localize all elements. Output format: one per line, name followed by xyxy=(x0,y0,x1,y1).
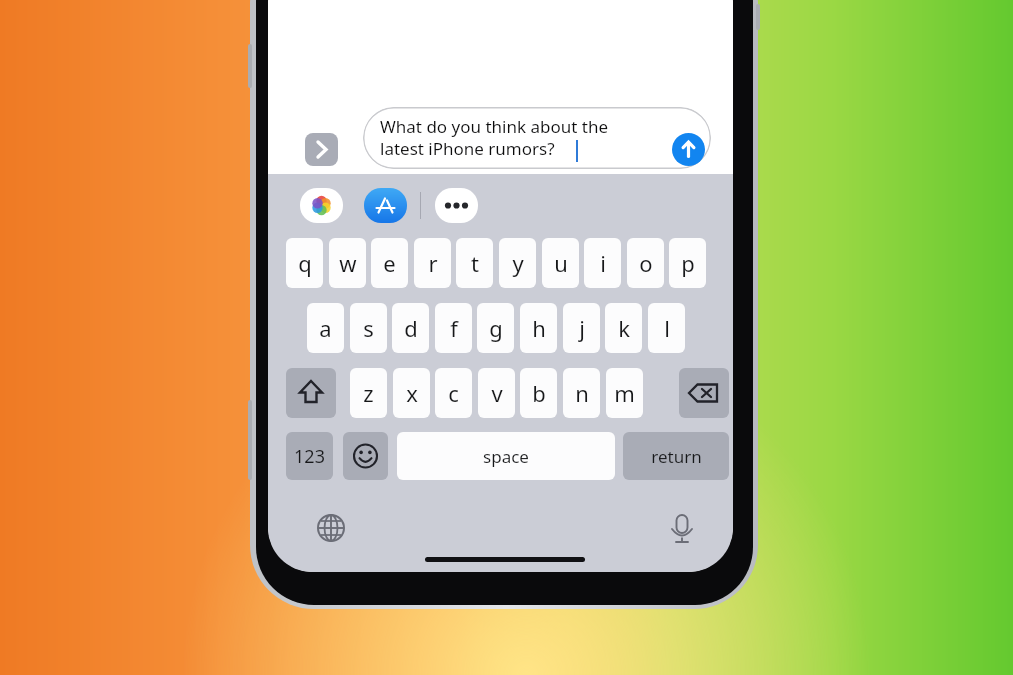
staticText: f xyxy=(450,313,458,343)
button[interactable]: x xyxy=(393,368,430,418)
button[interactable]: q xyxy=(286,238,323,288)
staticText: space xyxy=(483,445,529,468)
staticText: What do you think about the latest iPhon… xyxy=(380,115,609,160)
staticText: m xyxy=(614,378,635,408)
button[interactable]: j xyxy=(563,303,600,353)
staticText: a xyxy=(319,313,332,343)
staticText: t xyxy=(471,248,479,278)
staticText: z xyxy=(363,378,374,408)
staticText: l xyxy=(664,313,670,343)
button[interactable]: d xyxy=(392,303,429,353)
staticText: q xyxy=(298,248,312,278)
button[interactable]: p xyxy=(669,238,706,288)
button[interactable]: What do you think about the latest iPhon… xyxy=(363,107,711,169)
button[interactable]: m xyxy=(606,368,643,418)
staticText: v xyxy=(491,378,503,408)
button[interactable]: space xyxy=(397,432,615,480)
button[interactable]: b xyxy=(520,368,557,418)
button[interactable]: t xyxy=(456,238,493,288)
staticText: j xyxy=(579,313,585,343)
staticText: y xyxy=(512,248,524,278)
button[interactable]: Delete xyxy=(679,368,729,418)
button[interactable]: More xyxy=(435,188,478,223)
staticText: k xyxy=(618,313,630,343)
button[interactable]: Show apps xyxy=(305,133,338,166)
staticText: g xyxy=(489,313,503,343)
button[interactable]: 123 xyxy=(286,432,333,480)
button[interactable]: l xyxy=(648,303,685,353)
staticText: e xyxy=(383,248,396,278)
button[interactable]: Send xyxy=(672,133,705,166)
staticText: w xyxy=(339,248,357,278)
button[interactable]: w xyxy=(329,238,366,288)
button[interactable]: s xyxy=(350,303,387,353)
button[interactable]: y xyxy=(499,238,536,288)
button[interactable]: i xyxy=(584,238,621,288)
button[interactable]: App Store xyxy=(364,188,407,223)
button[interactable]: Shift xyxy=(286,368,336,418)
staticText: s xyxy=(363,313,374,343)
button[interactable]: z xyxy=(350,368,387,418)
button[interactable]: g xyxy=(477,303,514,353)
button[interactable]: k xyxy=(605,303,642,353)
button[interactable]: Change keyboard xyxy=(313,510,349,546)
button[interactable]: h xyxy=(520,303,557,353)
staticText: 123 xyxy=(294,444,325,469)
button[interactable]: v xyxy=(478,368,515,418)
staticText: i xyxy=(600,248,606,278)
staticText: return xyxy=(651,445,702,468)
button[interactable]: e xyxy=(371,238,408,288)
button[interactable]: a xyxy=(307,303,344,353)
button[interactable]: r xyxy=(414,238,451,288)
staticText: p xyxy=(681,248,695,278)
staticText: o xyxy=(639,248,653,278)
button[interactable]: Emoji xyxy=(343,432,388,480)
button[interactable]: Photos xyxy=(300,188,343,223)
button[interactable]: u xyxy=(542,238,579,288)
staticText: u xyxy=(554,248,568,278)
button[interactable]: return xyxy=(623,432,729,480)
staticText: r xyxy=(428,248,438,278)
button[interactable]: Dictate xyxy=(664,510,700,546)
staticText: b xyxy=(532,378,546,408)
button[interactable]: f xyxy=(435,303,472,353)
staticText: x xyxy=(406,378,418,408)
staticText: c xyxy=(448,378,459,408)
button[interactable]: o xyxy=(627,238,664,288)
staticText: n xyxy=(575,378,589,408)
staticText: h xyxy=(532,313,546,343)
staticText: d xyxy=(404,313,418,343)
button[interactable]: c xyxy=(435,368,472,418)
button[interactable]: n xyxy=(563,368,600,418)
